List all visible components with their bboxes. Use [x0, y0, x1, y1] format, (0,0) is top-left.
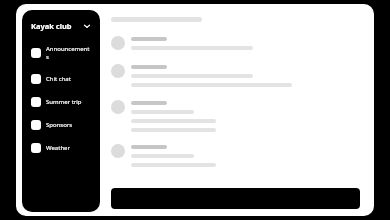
staticText: Kayak club — [31, 21, 72, 31]
button[interactable]: Summer trip — [22, 94, 100, 110]
button[interactable]: Weather — [22, 140, 100, 156]
button[interactable]: Sponsors — [22, 117, 100, 133]
staticText: Sponsors — [46, 121, 73, 129]
other: Expand club menu — [83, 22, 91, 30]
staticText: Summer trip — [46, 98, 82, 106]
button[interactable]: Kayak club — [22, 19, 100, 33]
staticText: Announcements — [46, 45, 91, 61]
staticText: Chit chat — [46, 75, 71, 83]
staticText: Weather — [46, 144, 70, 152]
button[interactable]: Message input — [111, 188, 360, 209]
button[interactable]: Announcements — [22, 42, 100, 64]
button[interactable]: Chit chat — [22, 71, 100, 87]
